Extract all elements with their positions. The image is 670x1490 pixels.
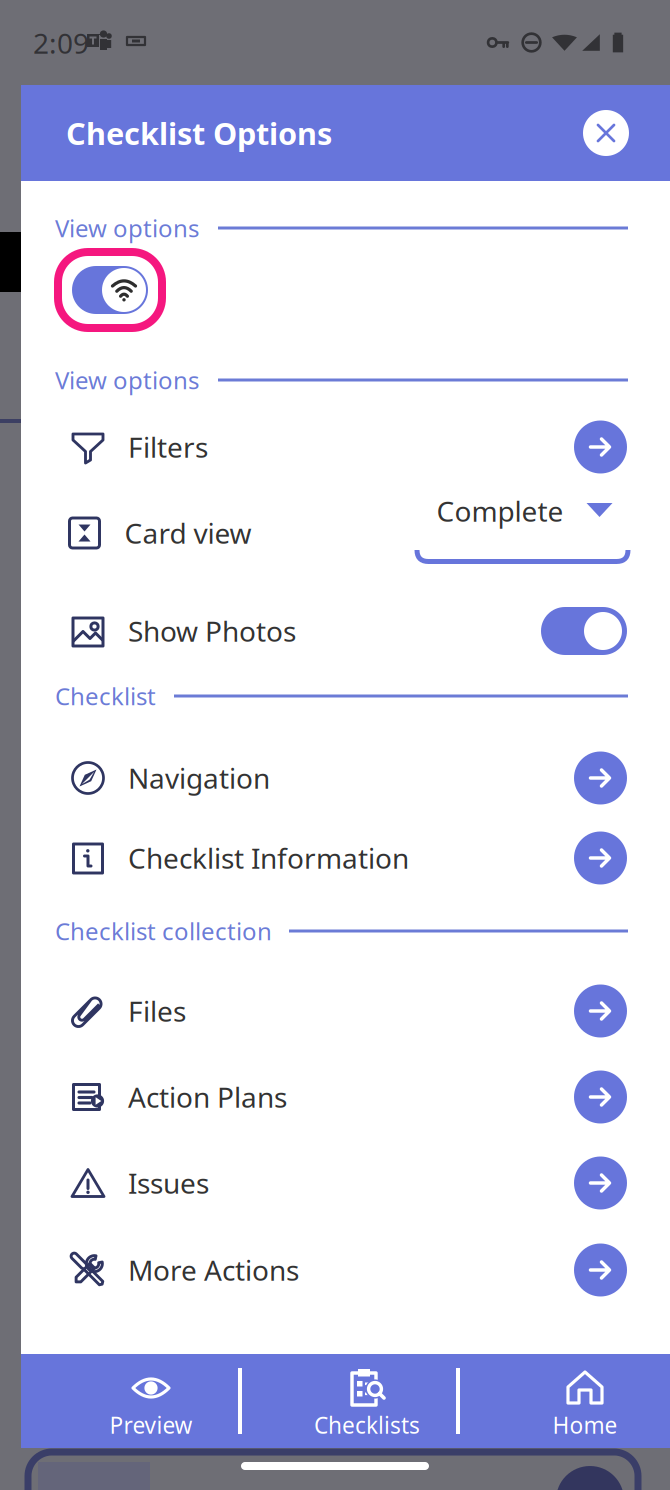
staticText: Checklist Information xyxy=(128,839,409,877)
button[interactable]: Complete xyxy=(414,490,630,576)
button[interactable]: Open xyxy=(574,1243,627,1296)
button[interactable]: Action Plans xyxy=(21,1054,670,1140)
button[interactable]: Open xyxy=(574,1156,627,1209)
staticText: Filters xyxy=(128,428,208,466)
staticText: Checklist xyxy=(55,680,156,712)
staticText: Home xyxy=(552,1410,617,1440)
staticText: Action Plans xyxy=(128,1078,287,1116)
staticText: Checklist Options xyxy=(66,113,332,153)
button[interactable]: Card view xyxy=(21,490,670,576)
button[interactable]: Home xyxy=(477,1354,670,1448)
staticText: Card view xyxy=(124,514,251,552)
button[interactable]: Checklist Information xyxy=(21,815,670,901)
staticText: Checklist collection xyxy=(55,915,272,947)
staticText: Show Photos xyxy=(128,612,296,650)
staticText: Navigation xyxy=(128,759,270,797)
button[interactable]: Close xyxy=(583,110,629,156)
staticText: 2:09 xyxy=(33,24,89,62)
button[interactable]: Files xyxy=(21,968,670,1054)
button[interactable]: Navigation xyxy=(21,735,670,821)
staticText: View options xyxy=(55,212,199,244)
staticText: More Actions xyxy=(128,1251,299,1289)
button[interactable]: More Actions xyxy=(21,1227,670,1313)
staticText: View options xyxy=(55,364,199,396)
button[interactable]: Open xyxy=(574,984,627,1037)
button[interactable]: Filters xyxy=(21,404,670,490)
button[interactable]: Open xyxy=(574,831,627,884)
button[interactable]: Show Photos xyxy=(21,588,670,674)
button[interactable]: Open xyxy=(574,751,627,804)
staticText: Checklists xyxy=(314,1410,420,1440)
button[interactable]: Checklists xyxy=(259,1354,475,1448)
staticText: Files xyxy=(128,992,186,1030)
button[interactable]: Open xyxy=(574,420,627,473)
button[interactable]: Open xyxy=(574,1070,627,1123)
button[interactable]: Preview xyxy=(43,1354,259,1448)
staticText: Preview xyxy=(109,1410,192,1440)
button[interactable]: Issues xyxy=(21,1140,670,1226)
button[interactable]: Toggle wifi xyxy=(58,252,162,328)
staticText: Issues xyxy=(128,1164,209,1202)
staticText: Complete xyxy=(436,492,563,530)
